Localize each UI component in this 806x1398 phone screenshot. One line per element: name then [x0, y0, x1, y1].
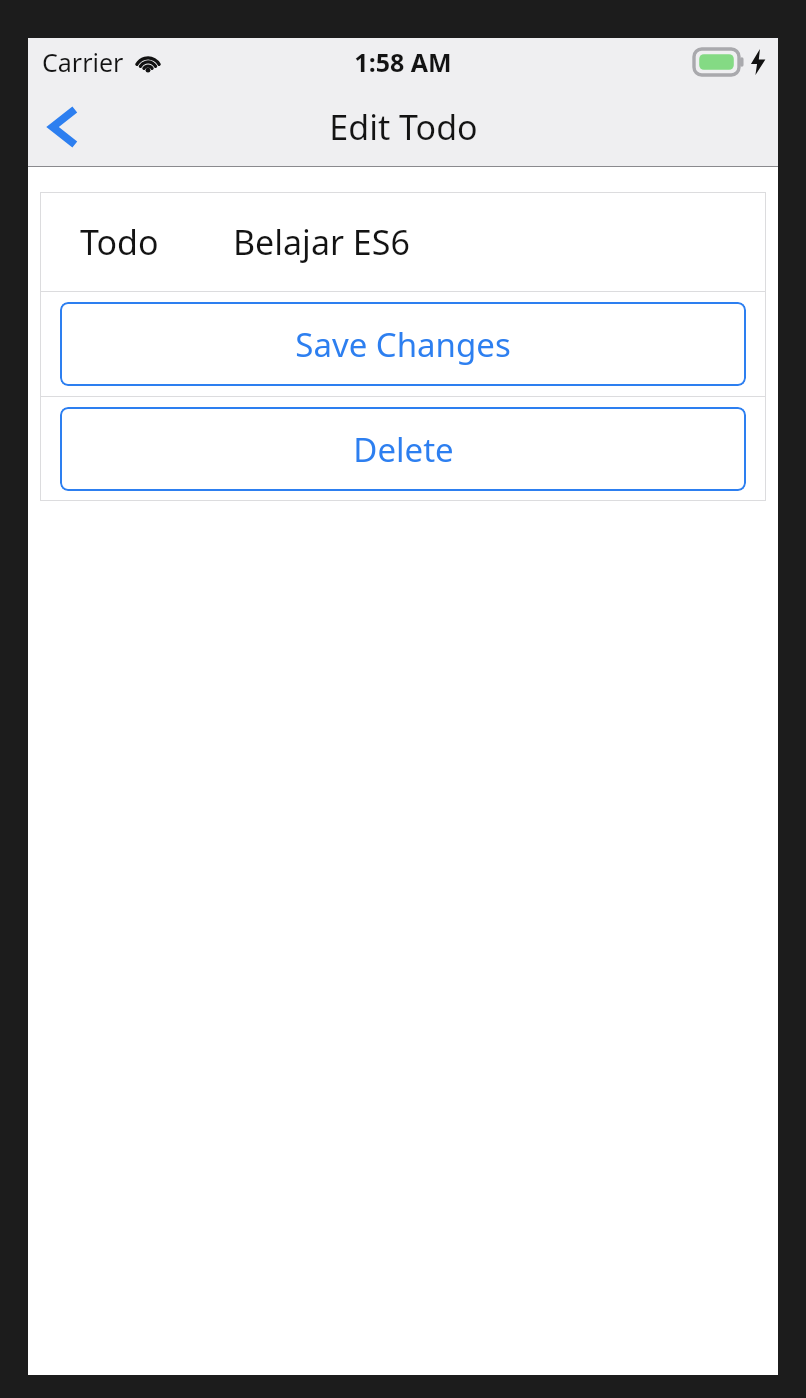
button[interactable]: Back [34, 94, 94, 160]
staticText: Delete [353, 427, 454, 472]
staticText: Save Changes [295, 322, 511, 367]
button[interactable]: Delete [60, 407, 746, 491]
staticText: Carrier [42, 45, 124, 79]
button[interactable]: Todo [40, 192, 766, 291]
staticText: Belajar ES6 [233, 219, 410, 265]
staticText: Edit Todo [329, 104, 478, 150]
button[interactable]: Save Changes [60, 302, 746, 386]
staticText: 1:58 AM [354, 45, 452, 79]
staticText: Todo [80, 219, 159, 265]
